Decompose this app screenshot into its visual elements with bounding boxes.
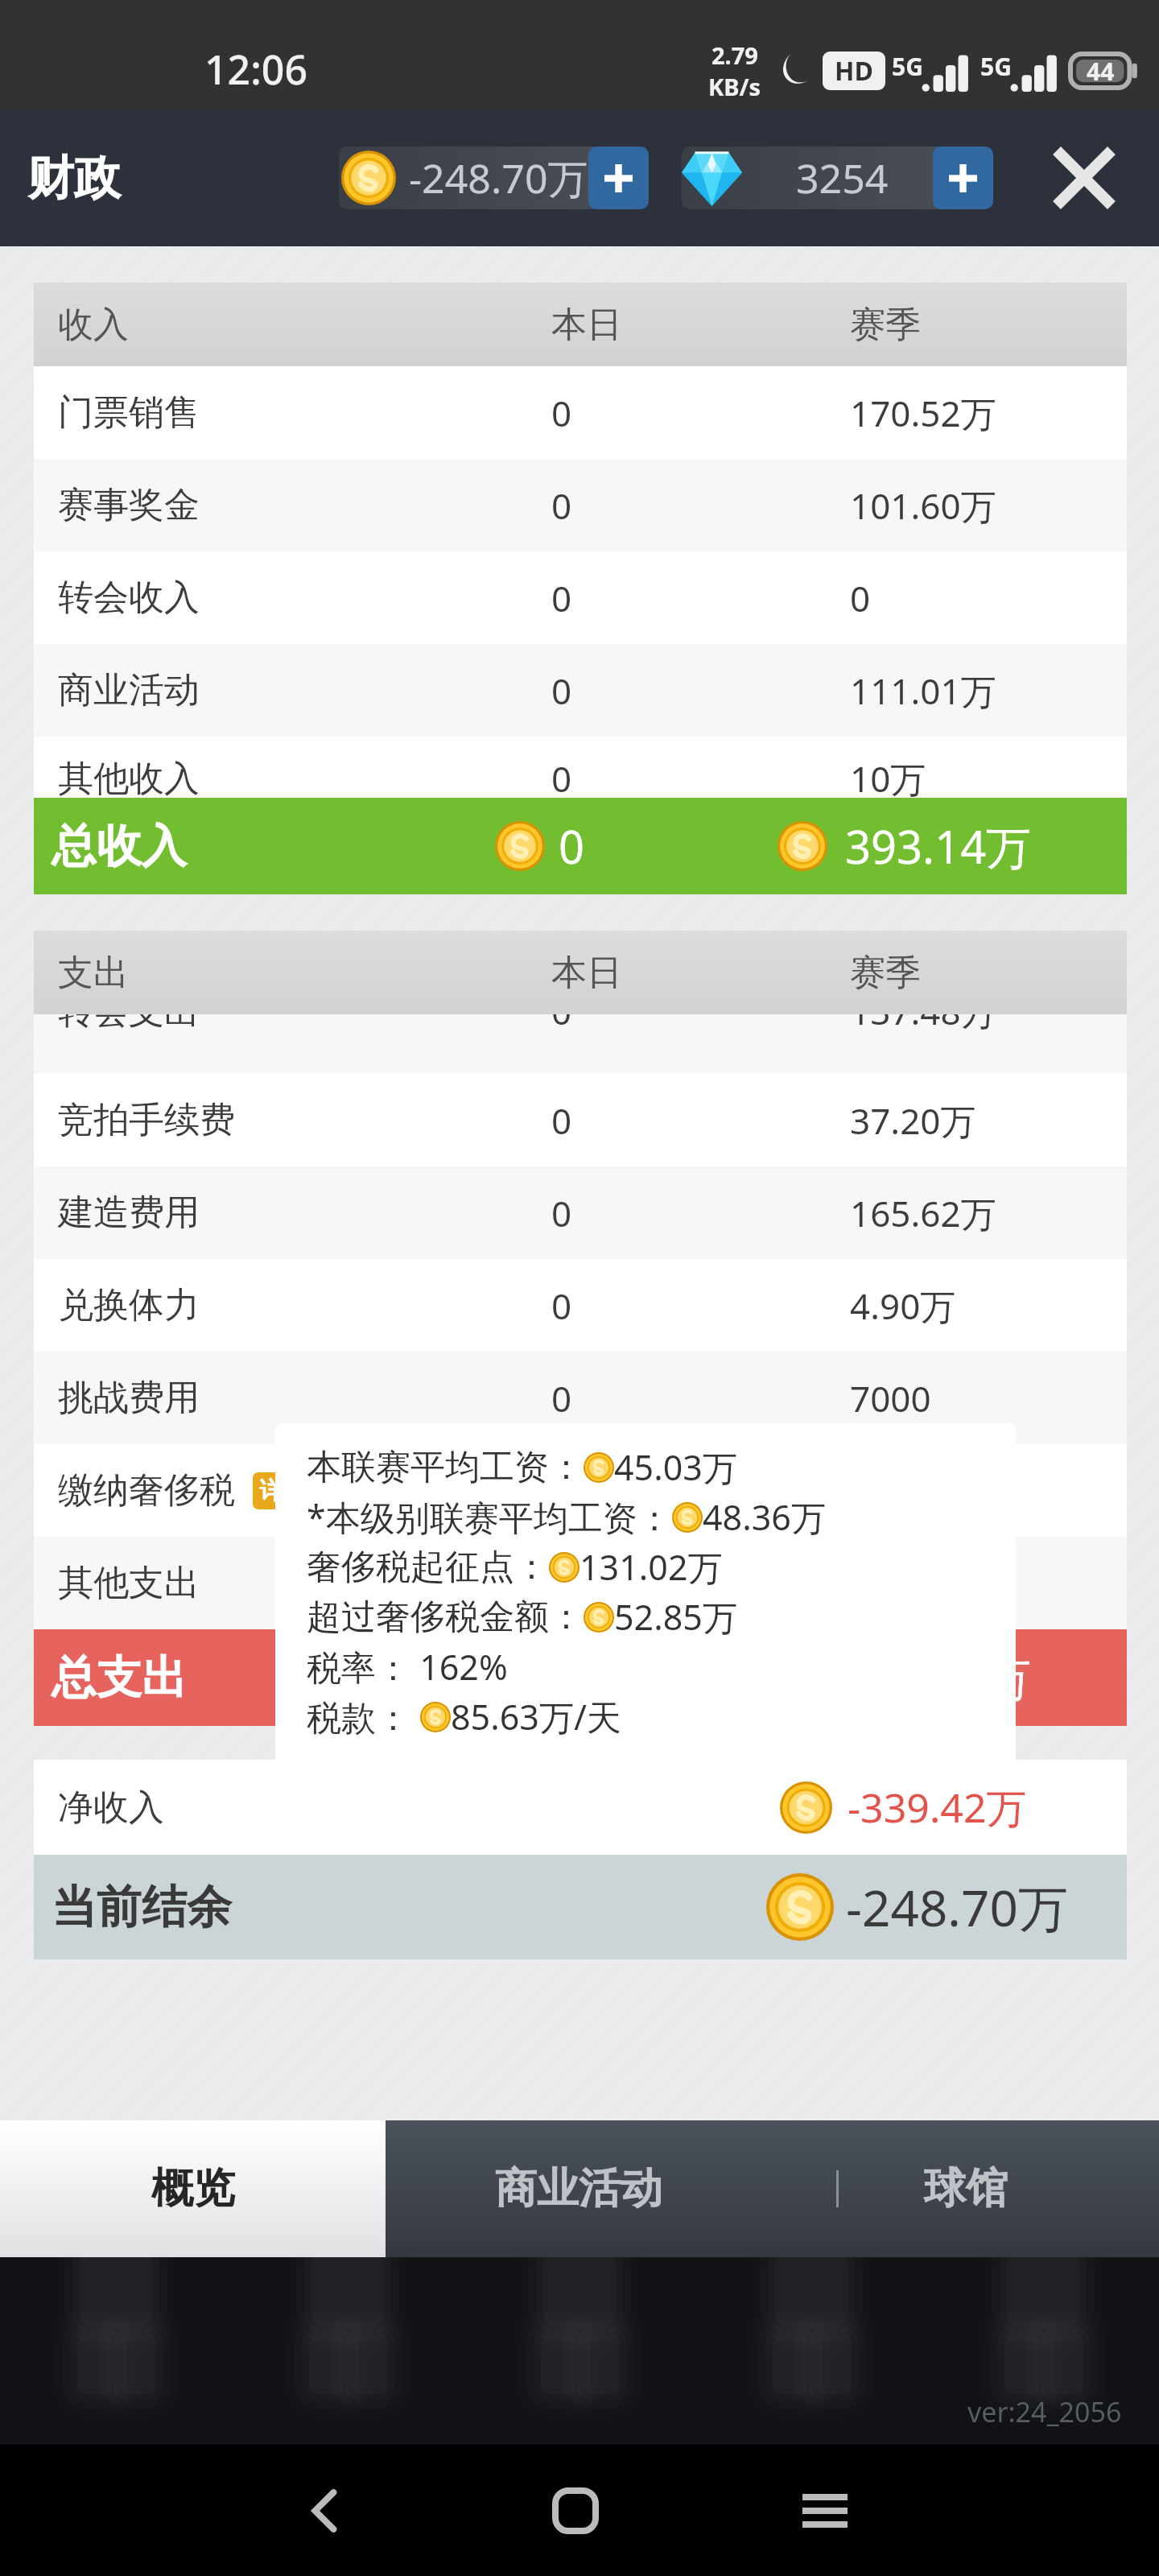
staticText: HD xyxy=(835,53,873,89)
button[interactable]: Close xyxy=(1048,142,1120,214)
staticText: 732.56万 xyxy=(845,1647,1032,1708)
button[interactable]: Home xyxy=(523,2458,628,2563)
staticText: 137.48万 xyxy=(850,1014,996,1035)
staticText: KB/s xyxy=(708,71,761,102)
staticText: 赛事奖金 xyxy=(58,483,200,527)
button[interactable]: 球馆 xyxy=(772,2120,1159,2257)
staticText: 详 xyxy=(259,1476,283,1506)
staticText: 101.60万 xyxy=(850,481,996,530)
staticText: 总支出 xyxy=(52,1649,187,1707)
staticText: 税款： xyxy=(307,1693,420,1740)
button[interactable]: 转会支出 xyxy=(34,1014,1127,1074)
staticText: 净收入 xyxy=(58,1785,164,1830)
staticText: 48.36万 xyxy=(703,1493,826,1541)
button[interactable]: 赛事奖金 xyxy=(34,459,1127,551)
staticText: 本日 xyxy=(551,951,622,995)
staticText: 0 xyxy=(551,754,572,798)
staticText: 支出 xyxy=(58,951,129,995)
staticText: 85.63万/天 xyxy=(451,1693,621,1740)
button[interactable]: 转会收入 xyxy=(34,551,1127,644)
button[interactable]: 概览 xyxy=(0,2120,386,2257)
staticText: 本日 xyxy=(551,303,622,347)
button[interactable]: Back xyxy=(273,2458,377,2563)
staticText: 收入 xyxy=(58,303,129,347)
staticText: 挑战费用 xyxy=(58,1376,200,1420)
staticText: -339.42万 xyxy=(848,1780,1027,1835)
staticText: 其他收入 xyxy=(58,757,200,798)
staticText: 0 xyxy=(551,1096,572,1145)
button[interactable]: 建造费用 xyxy=(34,1166,1127,1259)
staticText: 0 xyxy=(551,667,572,715)
button[interactable]: -248.70万 xyxy=(339,147,649,209)
staticText: 52.85万 xyxy=(614,1593,737,1641)
staticText: 赛季 xyxy=(850,303,921,347)
button[interactable]: 当前结余 xyxy=(34,1855,1127,1959)
button[interactable]: 兑换体力 xyxy=(34,1259,1127,1352)
staticText: 0 xyxy=(551,1014,572,1035)
staticText: 超过奢侈税金额： xyxy=(307,1596,584,1639)
button[interactable]: 缴纳奢侈税 xyxy=(34,1444,1127,1537)
button[interactable]: 竞拍手续费 xyxy=(34,1074,1127,1166)
staticText: 0 xyxy=(551,1374,572,1422)
staticText: 其他支出 xyxy=(58,1561,200,1605)
staticText: 0 xyxy=(551,1559,572,1608)
staticText: 0 xyxy=(551,574,572,622)
button[interactable]: 商业活动 xyxy=(386,2120,772,2257)
staticText: 当前结余 xyxy=(52,1879,232,1936)
staticText: 4.90万 xyxy=(850,1282,956,1330)
staticText: 0 xyxy=(551,1467,572,1515)
staticText: 本联赛平均工资： xyxy=(307,1446,584,1489)
staticText: 商业活动 xyxy=(58,668,200,712)
staticText: 0 xyxy=(559,815,585,877)
staticText: 5G xyxy=(980,50,1012,83)
staticText: 财政 xyxy=(27,149,121,208)
button[interactable]: 总收入 xyxy=(34,798,1127,894)
staticText: 概览 xyxy=(151,2162,235,2215)
staticText: 转会支出 xyxy=(58,1014,200,1034)
staticText: 赛季 xyxy=(850,951,921,995)
staticText: 0 xyxy=(551,1282,572,1330)
staticText: 转会收入 xyxy=(58,576,200,620)
staticText: 131.02万 xyxy=(579,1543,723,1591)
staticText: 5G xyxy=(892,50,923,83)
button[interactable]: Recents xyxy=(773,2458,877,2563)
staticText: 7000 xyxy=(850,1374,931,1422)
staticText: *本级别联赛平均工资： xyxy=(307,1493,672,1541)
staticText: 170.52万 xyxy=(850,389,996,437)
button[interactable]: Add xyxy=(933,147,993,209)
staticText: 44 xyxy=(1087,55,1115,88)
staticText: 总收入 xyxy=(52,818,187,875)
staticText: 3254 xyxy=(796,151,889,205)
button[interactable]: 总支出 xyxy=(34,1629,1127,1726)
staticText: 37.20万 xyxy=(850,1096,976,1145)
staticText: 10万 xyxy=(850,754,926,798)
button[interactable]: 其他收入 xyxy=(34,737,1127,798)
staticText: 门票销售 xyxy=(58,390,200,435)
staticText: 45.03万 xyxy=(614,1443,737,1491)
button[interactable]: 3254 xyxy=(682,147,993,209)
staticText: 税率： 162% xyxy=(307,1643,508,1690)
staticText: 商业活动 xyxy=(495,2162,662,2215)
staticText: 缴纳奢侈税 xyxy=(58,1468,235,1513)
staticText: 12:06 xyxy=(204,42,307,97)
button[interactable]: 净收入 xyxy=(34,1760,1127,1855)
staticText: 0 xyxy=(850,574,871,622)
staticText: ver:24_2056 xyxy=(967,2393,1122,2430)
button[interactable]: Add xyxy=(588,147,649,209)
button[interactable]: 门票销售 xyxy=(34,366,1127,459)
staticText: 球馆 xyxy=(924,2162,1008,2215)
button[interactable]: 其他支出 xyxy=(34,1537,1127,1629)
button[interactable]: 商业活动 xyxy=(34,644,1127,737)
staticText: 2.79 xyxy=(711,39,758,71)
button[interactable]: 挑战费用 xyxy=(34,1352,1127,1444)
staticText: 奢侈税起征点： xyxy=(307,1546,549,1589)
staticText: -248.70万 xyxy=(409,151,588,205)
staticText: 0 xyxy=(559,1647,585,1708)
staticText: 0 xyxy=(551,1189,572,1237)
staticText: 0 xyxy=(551,481,572,530)
staticText: 393.14万 xyxy=(845,815,1032,877)
staticText: 建造费用 xyxy=(58,1191,200,1235)
staticText: -248.70万 xyxy=(846,1873,1068,1942)
staticText: 165.62万 xyxy=(850,1189,996,1237)
staticText: 兑换体力 xyxy=(58,1283,200,1327)
